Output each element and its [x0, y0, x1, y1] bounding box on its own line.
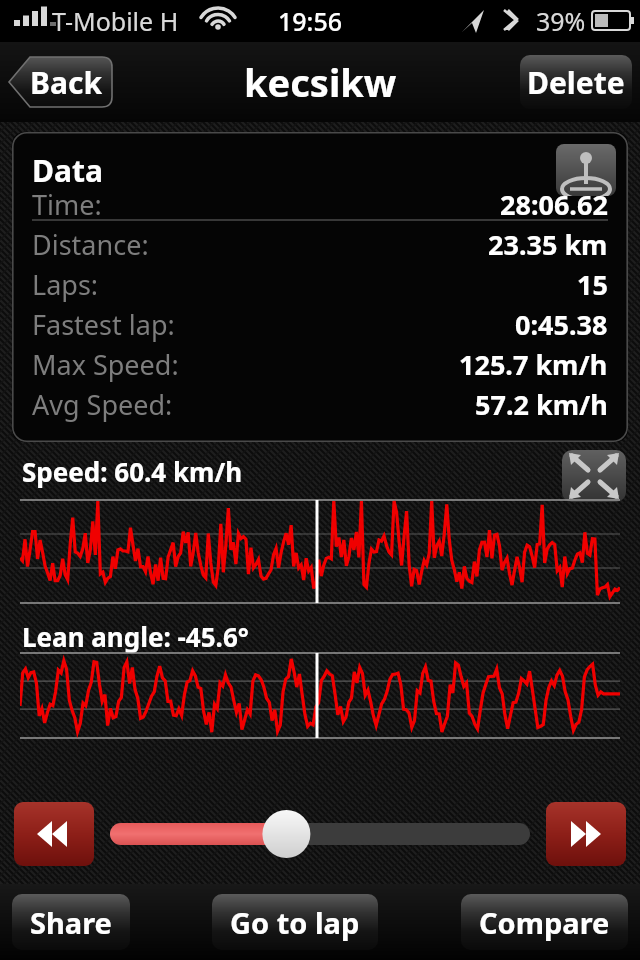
- staticText: 39%: [536, 4, 586, 38]
- staticText: Data: [32, 150, 103, 191]
- staticText: 0:45.38: [515, 306, 608, 343]
- staticText: 28:06.62: [500, 186, 608, 223]
- button[interactable]: Share: [12, 894, 130, 950]
- staticText: Distance:: [32, 226, 149, 263]
- button[interactable]: Rewind: [14, 802, 94, 866]
- staticText: Max Speed:: [32, 346, 179, 383]
- staticText: Laps:: [32, 266, 99, 303]
- staticText: Lean angle: -45.6°: [22, 619, 249, 654]
- staticText: T-Mobile H: [52, 4, 179, 38]
- staticText: Compare: [479, 903, 610, 942]
- button[interactable]: Expand chart: [562, 450, 626, 502]
- staticText: 125.7 km/h: [459, 346, 608, 383]
- button[interactable]: Go to lap: [212, 894, 378, 950]
- staticText: Delete: [527, 62, 625, 103]
- button[interactable]: Compare: [461, 894, 628, 950]
- staticText: Back: [30, 62, 102, 103]
- staticText: Fastest lap:: [32, 306, 175, 343]
- staticText: Share: [30, 903, 112, 942]
- staticText: Speed: 60.4 km/h: [22, 454, 243, 489]
- staticText: Avg Speed:: [32, 386, 173, 423]
- button[interactable]: Back: [8, 55, 112, 109]
- staticText: 23.35 km: [488, 226, 608, 263]
- staticText: 57.2 km/h: [475, 386, 608, 423]
- button[interactable]: Delete: [520, 55, 632, 109]
- staticText: Time:: [32, 186, 102, 223]
- staticText: 15: [577, 266, 608, 303]
- staticText: Go to lap: [230, 903, 360, 942]
- button[interactable]: Settings: [556, 144, 616, 196]
- button[interactable]: Forward: [546, 802, 626, 866]
- staticText: 19:56: [278, 4, 343, 38]
- button[interactable]: [110, 802, 530, 866]
- staticText: kecsikw: [244, 56, 397, 108]
